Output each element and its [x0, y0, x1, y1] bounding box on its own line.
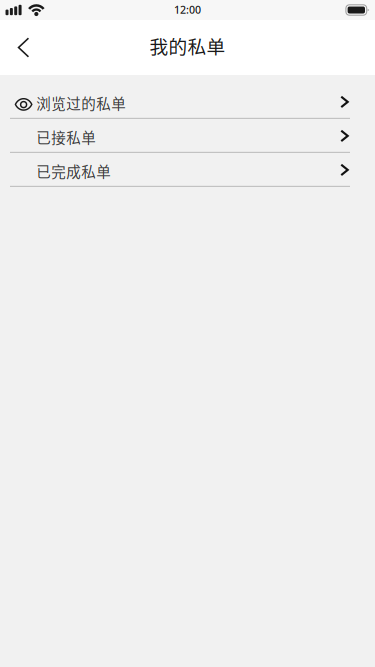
staticText: 浏览过的私单: [36, 92, 126, 113]
staticText: 12:00: [174, 2, 201, 17]
button[interactable]: 已接私单: [0, 119, 375, 153]
button[interactable]: 已完成私单: [0, 153, 375, 187]
staticText: 我的私单: [149, 32, 225, 59]
button[interactable]: 浏览过的私单: [0, 85, 375, 119]
staticText: 已完成私单: [36, 160, 111, 181]
button[interactable]: Back: [0, 25, 44, 69]
staticText: 已接私单: [36, 126, 96, 147]
